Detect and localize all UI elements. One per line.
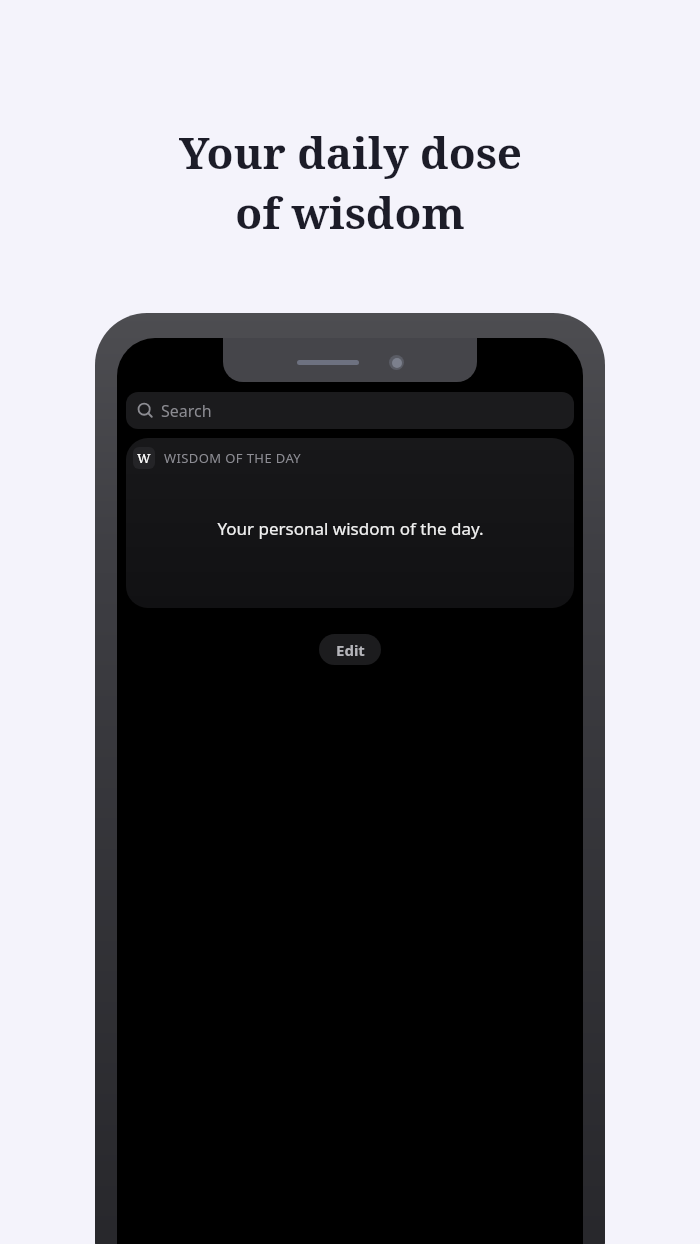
button[interactable]: Search xyxy=(126,392,574,429)
button[interactable]: Edit xyxy=(319,634,381,665)
staticText: Your daily dose xyxy=(179,122,522,182)
staticText: WISDOM OF THE DAY xyxy=(164,449,302,467)
staticText: Your personal wisdom of the day. xyxy=(217,517,484,540)
staticText: of wisdom xyxy=(235,182,465,242)
staticText: Edit xyxy=(336,640,365,660)
staticText: W xyxy=(137,449,151,467)
staticText: Search xyxy=(161,400,212,422)
button[interactable]: W xyxy=(126,438,574,608)
